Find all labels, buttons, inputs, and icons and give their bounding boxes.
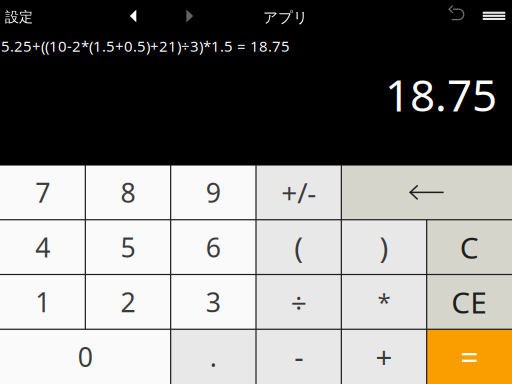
- staticText: 4: [35, 229, 50, 265]
- button[interactable]: 5: [85, 220, 171, 275]
- staticText: =: [460, 335, 478, 378]
- button[interactable]: .: [171, 329, 256, 384]
- button[interactable]: 3: [171, 274, 256, 329]
- button[interactable]: 1: [0, 274, 85, 329]
- button[interactable]: 2: [85, 274, 171, 329]
- staticText: +/-: [281, 173, 316, 211]
- staticText: 2: [120, 284, 135, 320]
- button[interactable]: 6: [171, 220, 256, 275]
- button[interactable]: Next: [175, 0, 205, 30]
- button[interactable]: 設定: [0, 0, 61, 30]
- button[interactable]: 7: [0, 165, 85, 220]
- staticText: 3: [206, 284, 221, 320]
- staticText: (: [294, 227, 303, 267]
- staticText: 5.25+((10-2*(1.5+0.5)+21)÷3)*1.5 = 18.75: [1, 36, 290, 56]
- button[interactable]: Undo: [443, 0, 471, 30]
- staticText: -: [294, 337, 303, 377]
- staticText: 9: [206, 174, 221, 210]
- button[interactable]: 4: [0, 220, 85, 275]
- button[interactable]: C: [427, 220, 512, 275]
- staticText: +: [375, 337, 392, 377]
- staticText: 7: [35, 174, 50, 210]
- staticText: CE: [451, 281, 487, 322]
- button[interactable]: Backspace: [341, 165, 512, 220]
- button[interactable]: (: [256, 220, 341, 275]
- staticText: 0: [78, 338, 93, 375]
- button[interactable]: ÷: [256, 274, 341, 329]
- button[interactable]: Menu: [479, 0, 509, 30]
- staticText: アプリ: [263, 8, 308, 27]
- button[interactable]: CE: [427, 274, 512, 329]
- staticText: .: [210, 338, 217, 375]
- button[interactable]: -: [256, 329, 341, 384]
- button[interactable]: Previous: [117, 0, 147, 30]
- button[interactable]: 9: [171, 165, 256, 220]
- staticText: 設定: [5, 8, 33, 26]
- staticText: 8: [120, 174, 135, 210]
- staticText: 1: [35, 284, 50, 320]
- staticText: 18.75: [385, 64, 497, 124]
- button[interactable]: ): [341, 220, 427, 275]
- staticText: ): [379, 227, 388, 267]
- button[interactable]: 0: [0, 329, 171, 384]
- button[interactable]: *: [341, 274, 427, 329]
- staticText: ÷: [291, 283, 307, 321]
- staticText: C: [460, 227, 479, 267]
- button[interactable]: +/-: [256, 165, 341, 220]
- button[interactable]: 8: [85, 165, 171, 220]
- button[interactable]: +: [341, 329, 427, 384]
- button[interactable]: =: [427, 329, 512, 384]
- staticText: 5: [120, 229, 135, 265]
- staticText: *: [377, 285, 390, 318]
- staticText: 6: [206, 229, 221, 265]
